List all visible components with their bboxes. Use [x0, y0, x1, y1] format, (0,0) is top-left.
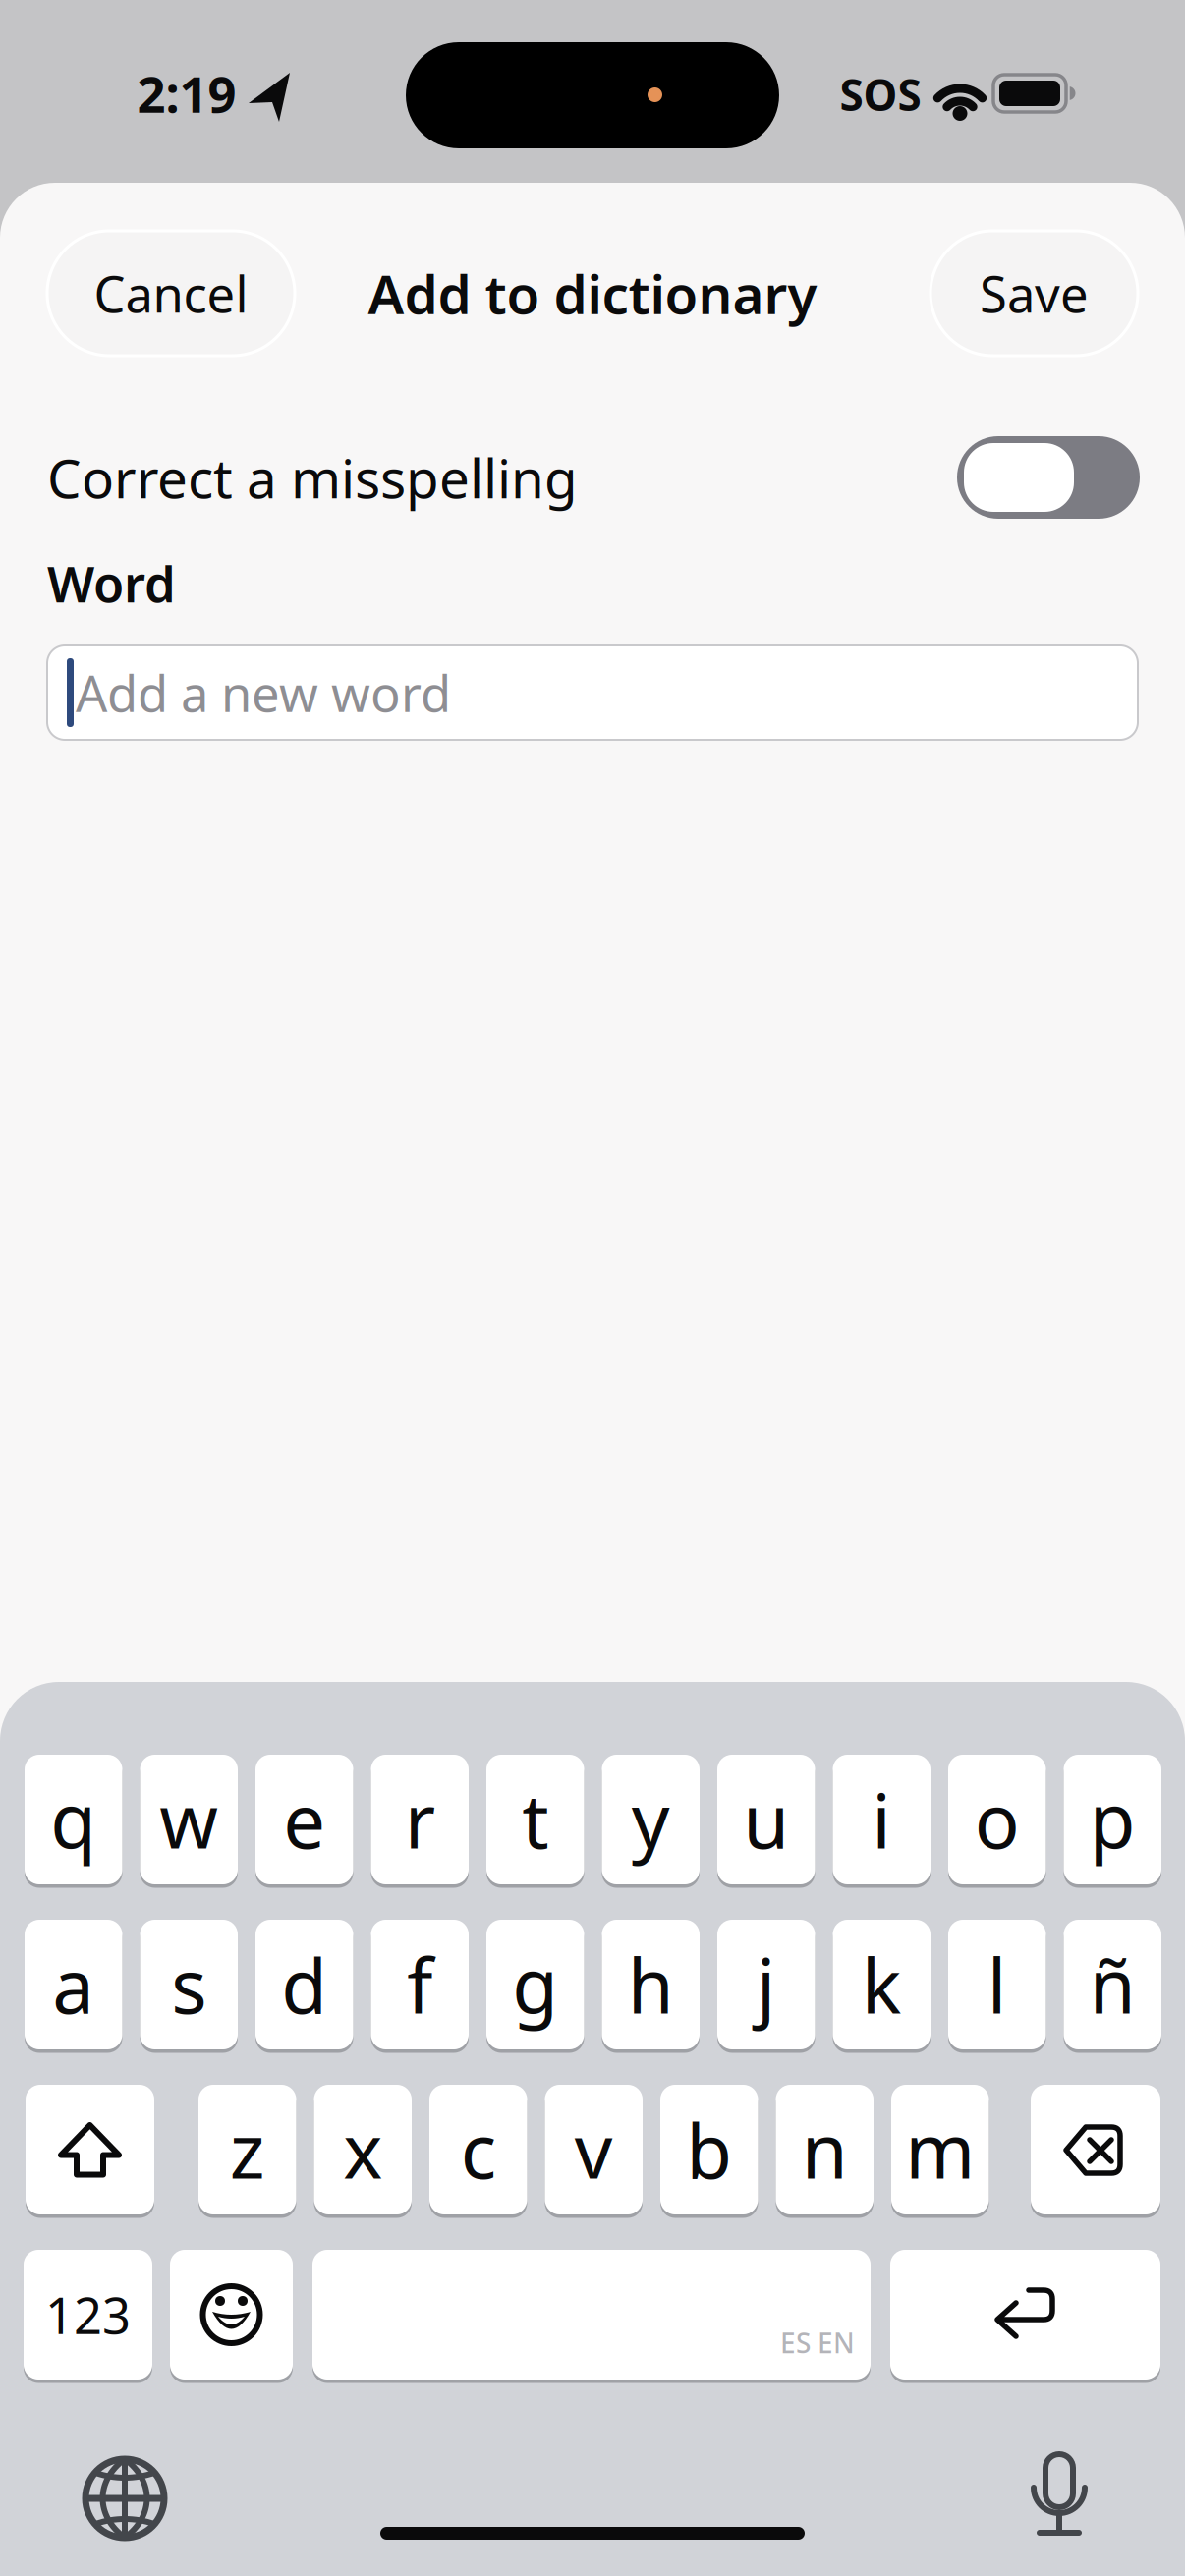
- button[interactable]: Next keyboard: [71, 2444, 179, 2552]
- staticText: d: [281, 1935, 327, 2034]
- button[interactable]: y: [602, 1755, 700, 1884]
- staticText: x: [343, 2100, 382, 2199]
- staticText: i: [872, 1770, 891, 1869]
- staticText: ES EN: [780, 2324, 855, 2361]
- staticText: k: [862, 1935, 902, 2034]
- button[interactable]: h: [602, 1920, 700, 2049]
- button[interactable]: l: [948, 1920, 1046, 2049]
- button[interactable]: n: [776, 2085, 874, 2214]
- staticText: g: [512, 1935, 558, 2034]
- button[interactable]: b: [660, 2085, 758, 2214]
- staticText: Word: [47, 550, 176, 616]
- staticText: h: [628, 1935, 674, 2034]
- staticText: Correct a misspelling: [47, 442, 578, 513]
- staticText: p: [1089, 1770, 1136, 1869]
- button[interactable]: Return: [890, 2250, 1160, 2380]
- button[interactable]: Correct a misspelling: [957, 436, 1140, 519]
- staticText: Add a new word: [76, 660, 451, 726]
- button[interactable]: c: [429, 2085, 527, 2214]
- button[interactable]: a: [25, 1920, 122, 2049]
- button[interactable]: v: [545, 2085, 643, 2214]
- button[interactable]: j: [717, 1920, 815, 2049]
- button[interactable]: e: [255, 1755, 353, 1884]
- button[interactable]: o: [948, 1755, 1046, 1884]
- staticText: t: [522, 1770, 548, 1869]
- staticText: 123: [45, 2282, 131, 2348]
- staticText: u: [743, 1770, 789, 1869]
- button[interactable]: Dictate: [1005, 2444, 1113, 2552]
- button[interactable]: Delete: [1031, 2085, 1160, 2214]
- staticText: e: [283, 1770, 325, 1869]
- staticText: a: [52, 1935, 95, 2034]
- staticText: z: [230, 2100, 265, 2199]
- staticText: SOS: [840, 66, 921, 123]
- button[interactable]: t: [486, 1755, 584, 1884]
- staticText: Cancel: [94, 260, 248, 326]
- button[interactable]: Numbers: [24, 2250, 152, 2380]
- staticText: ñ: [1089, 1935, 1136, 2034]
- button[interactable]: r: [371, 1755, 469, 1884]
- button[interactable]: Space: [312, 2250, 871, 2380]
- button[interactable]: m: [891, 2085, 989, 2214]
- button[interactable]: q: [25, 1755, 122, 1884]
- button[interactable]: g: [486, 1920, 584, 2049]
- staticText: w: [159, 1770, 218, 1869]
- button[interactable]: p: [1064, 1755, 1161, 1884]
- staticText: o: [975, 1770, 1020, 1869]
- button[interactable]: i: [833, 1755, 931, 1884]
- staticText: q: [50, 1770, 96, 1869]
- button[interactable]: Cancel: [47, 231, 295, 356]
- staticText: b: [686, 2100, 732, 2199]
- staticText: n: [802, 2100, 848, 2199]
- button[interactable]: Add a new word: [47, 645, 1138, 740]
- button[interactable]: f: [371, 1920, 469, 2049]
- button[interactable]: Shift: [26, 2085, 154, 2214]
- staticText: j: [756, 1935, 776, 2034]
- button[interactable]: x: [314, 2085, 412, 2214]
- button[interactable]: w: [140, 1755, 238, 1884]
- staticText: 2:19: [137, 60, 236, 126]
- staticText: Add to dictionary: [368, 258, 817, 329]
- button[interactable]: k: [833, 1920, 931, 2049]
- button[interactable]: u: [717, 1755, 815, 1884]
- staticText: Save: [980, 260, 1089, 326]
- button[interactable]: s: [140, 1920, 238, 2049]
- staticText: s: [171, 1935, 207, 2034]
- button[interactable]: Save: [931, 231, 1138, 356]
- staticText: y: [632, 1770, 670, 1869]
- staticText: r: [405, 1770, 435, 1869]
- button[interactable]: ñ: [1064, 1920, 1161, 2049]
- button[interactable]: d: [255, 1920, 353, 2049]
- staticText: l: [987, 1935, 1007, 2034]
- button[interactable]: Emoji: [170, 2250, 293, 2380]
- staticText: m: [905, 2100, 975, 2199]
- button[interactable]: z: [198, 2085, 296, 2214]
- staticText: f: [407, 1935, 433, 2034]
- staticText: c: [461, 2100, 496, 2199]
- staticText: v: [575, 2100, 613, 2199]
